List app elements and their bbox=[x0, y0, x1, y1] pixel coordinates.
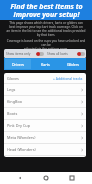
button[interactable]: Pink Dry Cup bbox=[4, 120, 86, 132]
staticText: Show items only bbox=[6, 52, 36, 56]
staticText: Coverage is based on the cups you have u… bbox=[4, 39, 88, 49]
button[interactable]: Recents bbox=[66, 172, 78, 184]
staticText: This page shows which drivers, karts or … bbox=[4, 21, 88, 37]
button[interactable]: Drivers bbox=[4, 58, 32, 70]
staticText: Boots bbox=[7, 111, 18, 116]
staticText: + Additional tracks bbox=[53, 76, 83, 81]
button[interactable]: Karts bbox=[32, 58, 59, 70]
button[interactable]: KingBoo bbox=[4, 96, 86, 108]
button[interactable]: Gliders bbox=[59, 58, 86, 70]
staticText: Show all karts bbox=[47, 52, 77, 56]
staticText: Meta (Wonders) bbox=[7, 135, 36, 140]
button[interactable]: Show items only bbox=[4, 49, 45, 58]
button[interactable]: Home bbox=[40, 172, 52, 184]
button[interactable]: Head (Wonders) bbox=[4, 144, 86, 156]
staticText: Pink Dry Cup bbox=[7, 123, 30, 128]
staticText: Karts bbox=[41, 62, 50, 67]
staticText: Legs bbox=[7, 87, 16, 92]
staticText: Head (Wonders) bbox=[7, 147, 36, 152]
button[interactable]: Show all karts bbox=[45, 49, 86, 58]
staticText: Drivers bbox=[12, 62, 25, 67]
button[interactable]: Back bbox=[14, 172, 26, 184]
button[interactable]: Meta (Wonders) bbox=[4, 132, 86, 144]
staticText: Gliders bbox=[67, 62, 79, 67]
staticText: KingBoo bbox=[7, 99, 23, 104]
staticText: Find the best items to improve your setu… bbox=[10, 2, 83, 19]
staticText: Gloves bbox=[7, 76, 19, 81]
button[interactable]: Boots bbox=[4, 108, 86, 120]
button[interactable]: Legs bbox=[4, 84, 86, 96]
